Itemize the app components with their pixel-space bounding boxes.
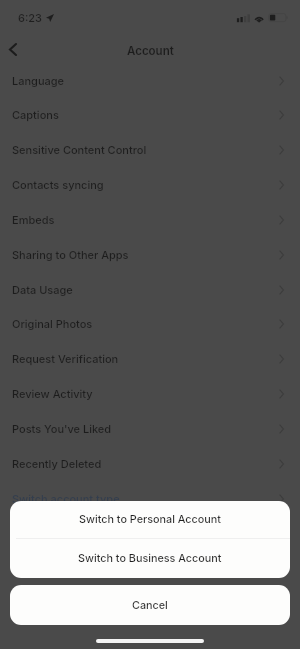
staticText: Sensitive Content Control [12, 143, 147, 156]
button[interactable]: Back [0, 30, 34, 63]
button[interactable]: Sensitive Content Control [0, 132, 300, 167]
staticText: Contacts syncing [12, 178, 104, 191]
button[interactable]: Embeds [0, 202, 300, 237]
button[interactable]: Recently Deleted [0, 446, 300, 481]
staticText: Posts You've Liked [12, 422, 112, 435]
staticText: Cancel [132, 599, 168, 612]
button[interactable]: Language [0, 63, 300, 98]
staticText: Review Activity [12, 387, 93, 400]
staticText: Data Usage [12, 283, 73, 296]
button[interactable]: Switch to Business Account [10, 539, 290, 578]
staticText: Recently Deleted [12, 457, 102, 470]
button[interactable]: Captions [0, 97, 300, 132]
button[interactable]: Sharing to Other Apps [0, 237, 300, 272]
button[interactable]: Switch account type [0, 481, 300, 516]
staticText: Switch account type [12, 492, 120, 505]
button[interactable]: Review Activity [0, 376, 300, 411]
button[interactable]: Original Photos [0, 306, 300, 341]
staticText: Switch to Business Account [78, 552, 222, 565]
staticText: Sharing to Other Apps [12, 248, 129, 261]
button[interactable]: Posts You've Liked [0, 411, 300, 446]
staticText: Request Verification [12, 352, 119, 365]
staticText: 6:23 [18, 11, 42, 24]
button[interactable]: Cancel [10, 585, 290, 625]
staticText: Switch to Personal Account [79, 513, 221, 526]
staticText: Language [12, 74, 65, 87]
staticText: Captions [12, 108, 59, 121]
staticText: Account [127, 44, 174, 58]
staticText: Embeds [12, 213, 55, 226]
staticText: Original Photos [12, 317, 93, 330]
button[interactable]: Data Usage [0, 272, 300, 307]
button[interactable]: Switch to Personal Account [10, 501, 290, 538]
button[interactable]: Contacts syncing [0, 167, 300, 202]
button[interactable]: Request Verification [0, 341, 300, 376]
